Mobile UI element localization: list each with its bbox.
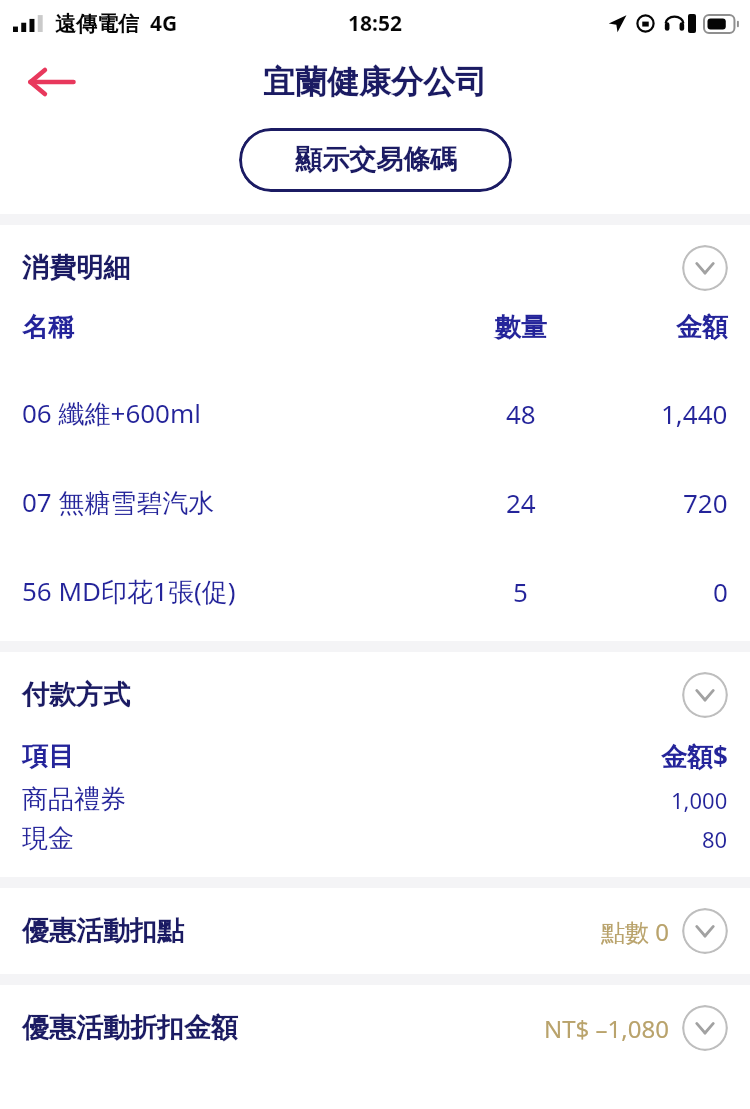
staticText: 0 (713, 574, 728, 609)
button[interactable]: 商品禮券 (0, 783, 750, 816)
button[interactable]: 名稱 (0, 311, 750, 344)
staticText: 優惠活動扣點 (22, 914, 184, 948)
staticText: 名稱 (22, 311, 74, 344)
staticText: 商品禮券 (22, 783, 126, 816)
staticText: 數量 (495, 311, 547, 344)
staticText: 現金 (22, 822, 74, 855)
staticText: 48 (506, 396, 536, 431)
staticText: 07 無糖雪碧汽水 (22, 484, 215, 520)
staticText: 金額$ (661, 738, 728, 774)
button[interactable]: 優惠活動扣點 (0, 888, 750, 974)
button[interactable]: 現金 (0, 822, 750, 855)
staticText: 付款方式 (22, 678, 130, 712)
staticText: 點數 0 (601, 915, 669, 948)
staticText: 18:52 (348, 9, 402, 38)
staticText: 消費明細 (22, 251, 130, 285)
button[interactable]: 付款方式 (0, 652, 750, 738)
staticText: 5 (513, 574, 528, 609)
button[interactable]: 項目 (0, 738, 750, 774)
staticText: 金額 (676, 311, 728, 344)
staticText: 06 纖維+600ml (22, 395, 202, 431)
button[interactable]: 56 MD印花1張(促) (0, 573, 750, 609)
staticText: 1,440 (661, 396, 728, 431)
button[interactable]: 優惠活動折扣金額 (0, 985, 750, 1071)
button[interactable]: 顯示交易條碼 (239, 128, 512, 192)
button[interactable]: Back (22, 52, 82, 112)
staticText: 遠傳電信 4G (55, 9, 178, 38)
button[interactable]: 06 纖維+600ml (0, 395, 750, 431)
staticText: 顯示交易條碼 (295, 143, 457, 177)
staticText: NT$ –1,080 (544, 1012, 669, 1045)
staticText: 宜蘭健康分公司 (263, 62, 487, 102)
staticText: 24 (506, 485, 536, 520)
staticText: 優惠活動折扣金額 (22, 1011, 238, 1045)
button[interactable]: 消費明細 (0, 225, 750, 311)
staticText: 項目 (22, 740, 74, 773)
staticText: 1,000 (671, 785, 728, 815)
button[interactable]: 07 無糖雪碧汽水 (0, 484, 750, 520)
staticText: 56 MD印花1張(促) (22, 573, 236, 609)
staticText: 80 (702, 824, 728, 854)
staticText: 720 (683, 485, 728, 520)
